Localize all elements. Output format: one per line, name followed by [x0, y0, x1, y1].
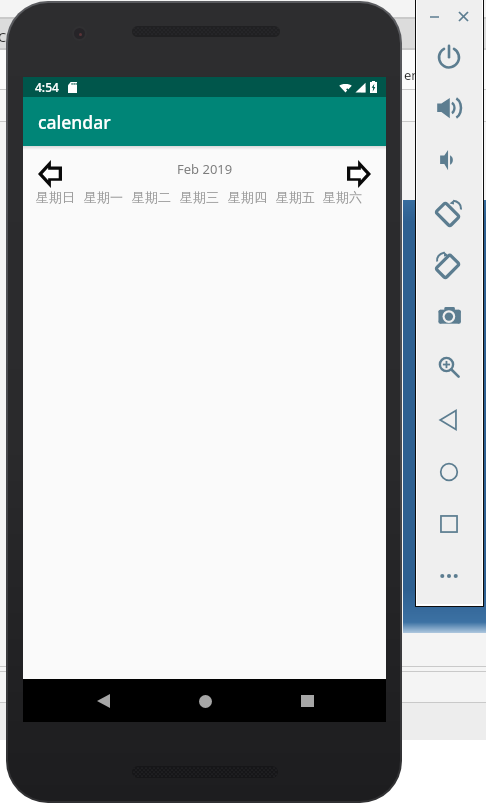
staticText: C	[0, 28, 7, 46]
button[interactable]: Screenshot	[429, 296, 469, 336]
button[interactable]: Home	[185, 681, 225, 721]
staticText: 星期六	[323, 189, 362, 205]
staticText: Feb 2019	[177, 160, 233, 178]
staticText: en	[404, 66, 420, 84]
staticText: 4:54	[35, 79, 59, 95]
button[interactable]: Overview	[429, 504, 469, 544]
button[interactable]: Previous month	[34, 158, 66, 190]
button[interactable]: Power	[429, 36, 469, 76]
button[interactable]: Back	[83, 681, 123, 721]
button[interactable]: calendar	[23, 97, 386, 146]
staticText: 星期二	[132, 189, 171, 205]
button[interactable]: Next month	[343, 158, 375, 190]
button[interactable]: Rotate right	[429, 244, 469, 284]
staticText: 星期三	[180, 189, 219, 205]
button[interactable]: Volume down	[429, 140, 469, 180]
staticText: 星期一	[84, 189, 123, 205]
button[interactable]: Volume up	[429, 88, 469, 128]
button[interactable]: Close	[453, 6, 474, 27]
button[interactable]: Home	[429, 452, 469, 492]
staticText: 星期四	[228, 189, 267, 205]
button[interactable]: Back	[429, 400, 469, 440]
button[interactable]: More	[429, 556, 469, 596]
button[interactable]: Rotate left	[429, 192, 469, 232]
staticText: 星期日	[36, 189, 75, 205]
staticText: calendar	[38, 110, 111, 134]
staticText: 星期五	[276, 189, 315, 205]
button[interactable]: Minimize	[424, 6, 445, 27]
button[interactable]: Recents	[287, 681, 327, 721]
button[interactable]: Zoom	[429, 348, 469, 388]
